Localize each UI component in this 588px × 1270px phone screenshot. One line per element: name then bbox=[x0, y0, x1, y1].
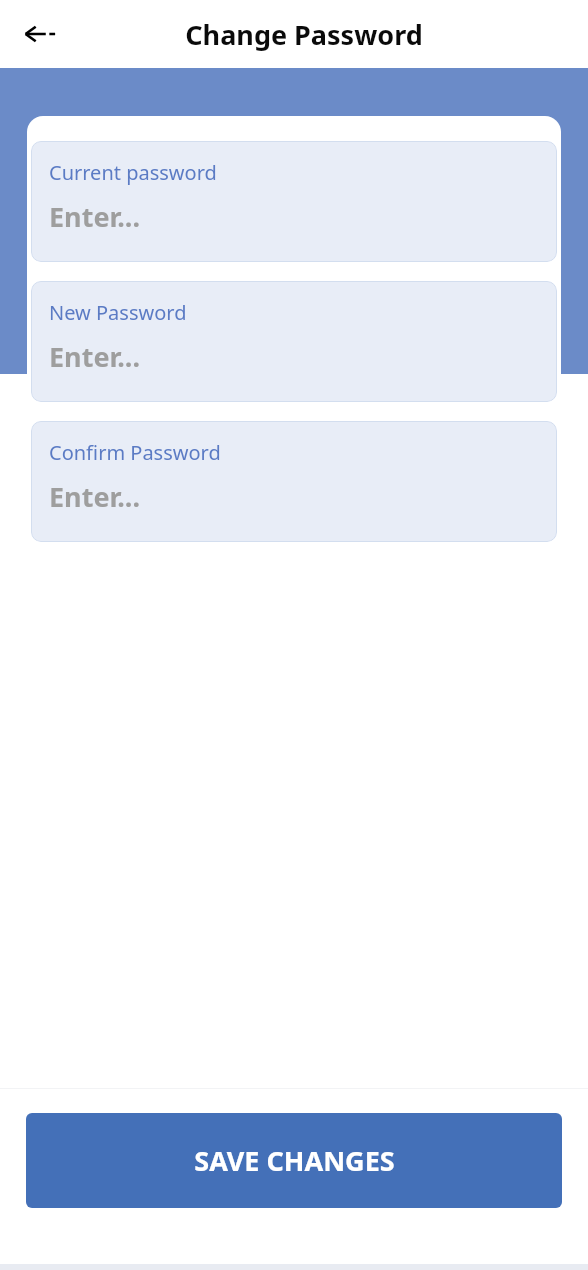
staticText: Enter... bbox=[49, 478, 141, 515]
button[interactable]: SAVE CHANGES bbox=[26, 1113, 562, 1208]
button[interactable]: New Password bbox=[31, 281, 557, 402]
staticText: New Password bbox=[49, 299, 187, 326]
staticText: Enter... bbox=[49, 338, 141, 375]
staticText: Change Password bbox=[185, 16, 423, 53]
button[interactable]: Current password bbox=[31, 141, 557, 262]
button[interactable]: Back bbox=[14, 8, 66, 60]
staticText: SAVE CHANGES bbox=[194, 1142, 395, 1179]
staticText: Current password bbox=[49, 159, 217, 186]
button[interactable]: Confirm Password bbox=[31, 421, 557, 542]
staticText: Enter... bbox=[49, 198, 141, 235]
staticText: Confirm Password bbox=[49, 439, 221, 466]
